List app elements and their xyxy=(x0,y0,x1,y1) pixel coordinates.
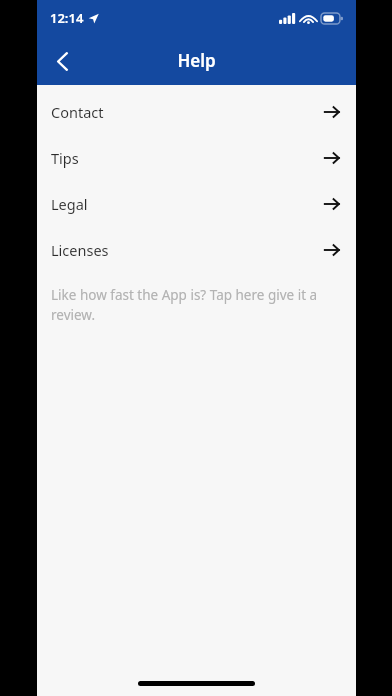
staticText: Like how fast the App is? Tap here give … xyxy=(51,286,332,324)
staticText: Tips xyxy=(51,148,79,168)
staticText: Legal xyxy=(51,194,88,214)
staticText: Contact xyxy=(51,102,104,122)
staticText: Help xyxy=(177,49,216,72)
staticText: 12:14 xyxy=(50,9,84,27)
button[interactable]: Contact xyxy=(37,89,356,135)
staticText: Licenses xyxy=(51,240,109,260)
button[interactable]: Licenses xyxy=(37,227,356,273)
button[interactable]: Back xyxy=(40,39,84,83)
button[interactable]: Like how fast the App is? Tap here give … xyxy=(37,273,356,336)
button[interactable]: Tips xyxy=(37,135,356,181)
button[interactable]: Legal xyxy=(37,181,356,227)
